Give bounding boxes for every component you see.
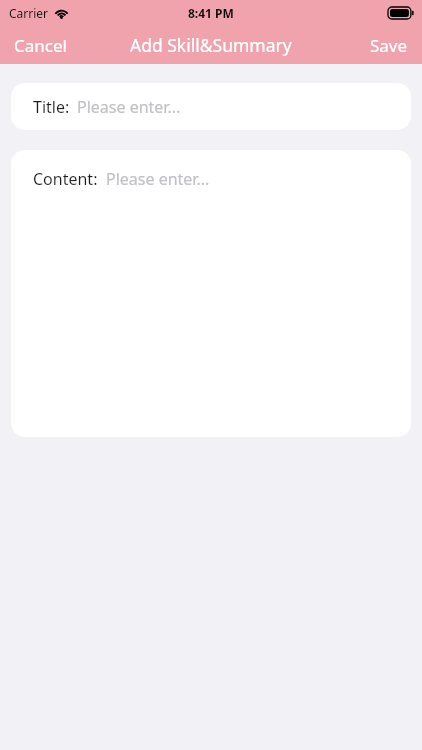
staticText: Save: [370, 34, 408, 57]
staticText: 8:41 PM: [188, 5, 234, 21]
staticText: Add Skill&Summary: [130, 33, 292, 57]
staticText: Content:: [33, 168, 98, 190]
button[interactable]: Cancel: [0, 28, 81, 63]
button[interactable]: Title:: [11, 83, 411, 130]
staticText: Please enter...: [106, 168, 210, 190]
staticText: Carrier: [9, 5, 49, 21]
staticText: Please enter...: [77, 96, 181, 118]
staticText: Title:: [33, 96, 70, 118]
staticText: Cancel: [14, 34, 67, 57]
button[interactable]: Save: [356, 28, 422, 63]
other: Battery full: [388, 7, 414, 19]
other: Wi-Fi signal: [54, 8, 69, 19]
button[interactable]: Content:: [11, 150, 411, 437]
